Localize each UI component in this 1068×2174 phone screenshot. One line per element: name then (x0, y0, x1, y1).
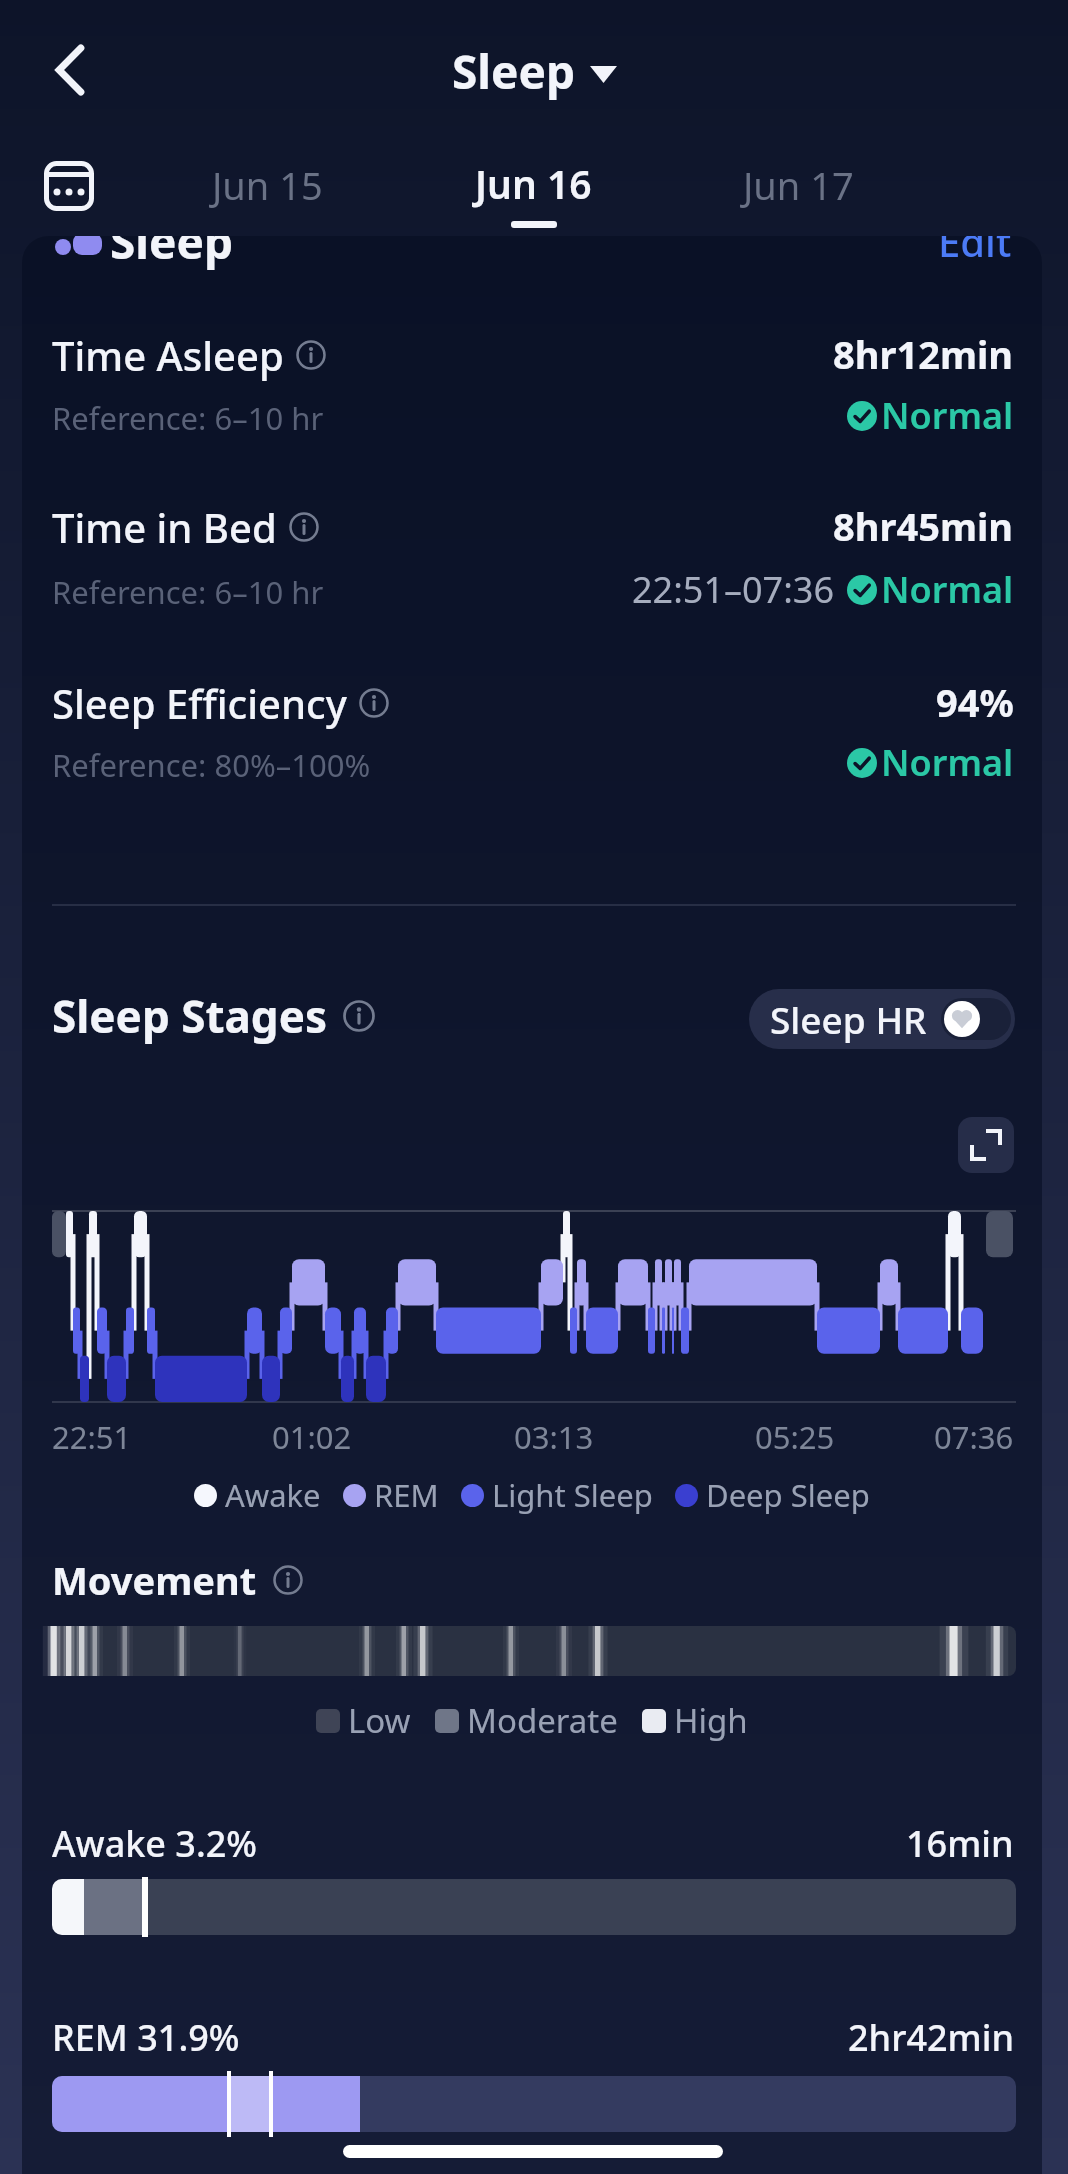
staticText: Time Asleep (52, 328, 284, 382)
staticText: Jun 15 (212, 159, 323, 211)
staticText: 03:13 (514, 1416, 594, 1458)
staticText: Awake 3.2% (52, 1819, 258, 1868)
staticText: Jun 16 (475, 157, 592, 210)
staticText: 8hr45min (833, 500, 1014, 552)
staticText: Movement (52, 1554, 257, 1606)
button[interactable]: Jun 15 (182, 155, 352, 215)
staticText: Sleep Efficiency (52, 676, 347, 730)
staticText: Reference: 6–10 hr (52, 571, 324, 613)
button[interactable]: Jun 16 (448, 153, 618, 213)
button[interactable] (34, 152, 104, 220)
staticText: Sleep (110, 236, 234, 273)
staticText: 07:36 (934, 1416, 1014, 1458)
button[interactable]: Edit (938, 236, 1012, 268)
button[interactable]: Sleep (452, 40, 617, 103)
staticText: Low (348, 1698, 411, 1743)
staticText: Normal (881, 738, 1014, 787)
staticText: Edit (938, 236, 1012, 268)
staticText: Reference: 80%–100% (52, 744, 371, 786)
staticText: Sleep HR (770, 994, 927, 1044)
staticText: Normal (881, 391, 1014, 440)
staticText: Time in Bed (52, 500, 277, 554)
staticText: Awake (225, 1474, 321, 1516)
staticText: REM 31.9% (52, 2013, 240, 2062)
staticText: Sleep Stages (52, 986, 327, 1046)
staticText: 16min (906, 1819, 1014, 1868)
staticText: 22:51 (52, 1416, 132, 1458)
staticText: 94% (936, 676, 1014, 728)
button[interactable]: Sleep HR (749, 989, 1015, 1049)
button[interactable]: Jun 17 (713, 155, 883, 215)
staticText: Sleep (452, 40, 576, 103)
staticText: Light Sleep (492, 1474, 653, 1516)
staticText: Moderate (467, 1698, 618, 1743)
staticText: Deep Sleep (706, 1474, 870, 1516)
staticText: 01:02 (272, 1416, 352, 1458)
staticText: 05:25 (755, 1416, 835, 1458)
staticText: 8hr12min (833, 328, 1014, 380)
staticText: 2hr42min (848, 2013, 1014, 2062)
staticText: Reference: 6–10 hr (52, 397, 324, 439)
staticText: High (674, 1698, 748, 1743)
button[interactable] (40, 36, 100, 104)
staticText: 22:51–07:36 (632, 565, 835, 614)
staticText: Jun 17 (743, 159, 854, 211)
button[interactable] (958, 1117, 1014, 1173)
staticText: REM (374, 1474, 439, 1516)
staticText: Normal (881, 565, 1014, 614)
